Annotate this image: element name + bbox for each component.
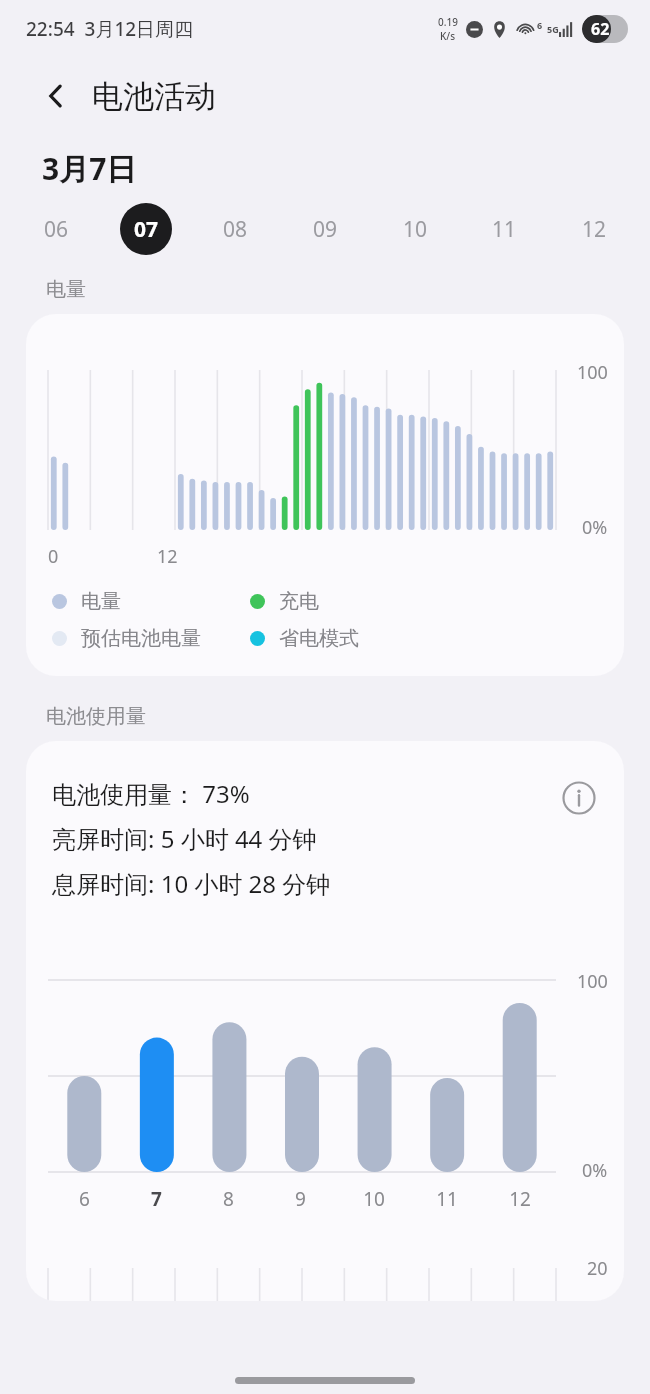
staticText: 07: [134, 215, 159, 244]
staticText: 20: [587, 1256, 608, 1281]
button[interactable]: 06: [30, 203, 82, 255]
staticText: 3月7日: [42, 148, 137, 189]
staticText: 省电模式: [279, 626, 359, 651]
staticText: 11: [436, 1186, 458, 1212]
staticText: 息屏时间: 10 小时 28 分钟: [52, 867, 331, 900]
button[interactable]: 11: [478, 203, 530, 255]
staticText: 22:54 3月12日周四: [26, 16, 194, 42]
staticText: 电池使用量： 73%: [52, 777, 250, 810]
staticText: 电池活动: [92, 77, 216, 116]
staticText: 8: [223, 1186, 234, 1212]
staticText: 11: [492, 215, 517, 244]
button[interactable]: 09: [299, 203, 351, 255]
staticText: 100: [577, 969, 608, 994]
staticText: 6: [79, 1186, 90, 1212]
staticText: 0%: [582, 515, 608, 540]
staticText: 10: [403, 215, 428, 244]
staticText: 12: [582, 215, 607, 244]
button[interactable]: 12: [568, 203, 620, 255]
staticText: 100: [577, 360, 608, 385]
button[interactable]: Back: [34, 74, 78, 118]
button[interactable]: 电池使用量： 73%: [26, 741, 624, 1301]
staticText: 08: [223, 215, 248, 244]
staticText: 充电: [279, 589, 319, 614]
button[interactable]: Info: [558, 777, 600, 819]
staticText: 电池使用量: [46, 704, 146, 729]
staticText: 12: [509, 1186, 531, 1212]
staticText: 7: [151, 1186, 162, 1212]
staticText: 5G: [547, 23, 559, 35]
staticText: K/s: [440, 29, 456, 43]
button[interactable]: 100: [26, 314, 624, 676]
staticText: 62: [591, 18, 610, 40]
staticText: 预估电池电量: [81, 626, 201, 651]
staticText: 9: [295, 1186, 306, 1212]
button[interactable]: 07: [120, 203, 172, 255]
staticText: 0%: [582, 1158, 608, 1183]
staticText: 电量: [81, 589, 121, 614]
staticText: 0: [48, 544, 59, 569]
staticText: 06: [44, 215, 69, 244]
staticText: 0.19: [438, 15, 458, 29]
staticText: 电量: [46, 277, 86, 302]
button[interactable]: 08: [209, 203, 261, 255]
staticText: 6: [537, 19, 543, 31]
staticText: 10: [363, 1186, 385, 1212]
staticText: 亮屏时间: 5 小时 44 分钟: [52, 822, 317, 855]
button[interactable]: 10: [389, 203, 441, 255]
staticText: 09: [313, 215, 338, 244]
staticText: 12: [157, 544, 178, 569]
